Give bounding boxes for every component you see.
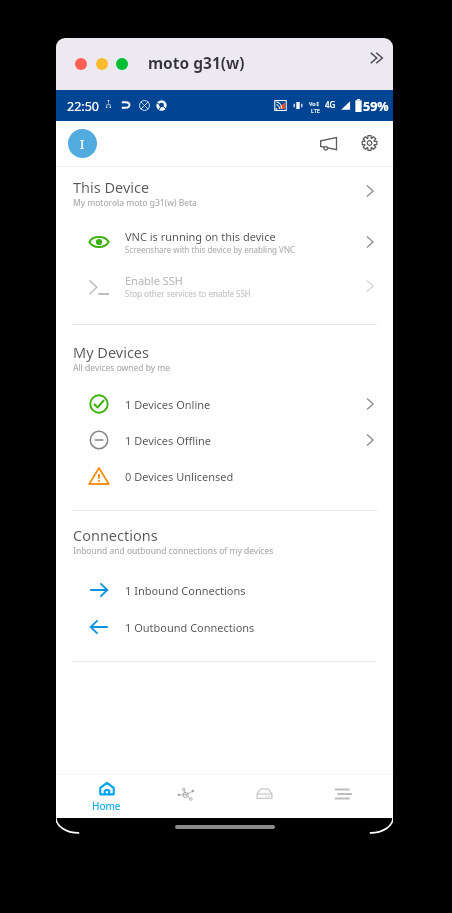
staticText: Connections bbox=[73, 525, 158, 545]
button[interactable]: Account bbox=[68, 129, 97, 158]
button[interactable]: 1 Devices Online bbox=[56, 386, 393, 422]
staticText: This Device bbox=[73, 177, 150, 197]
staticText: All devices owned by me bbox=[73, 362, 171, 374]
button[interactable]: Network bbox=[146, 774, 225, 818]
button[interactable]: Home bbox=[66, 774, 146, 818]
staticText: Screenshare with this device by enabling… bbox=[125, 244, 296, 255]
staticText: Inbound and outbound connections of my d… bbox=[73, 545, 274, 557]
staticText: Stop other services to enable SSH bbox=[125, 288, 251, 299]
button[interactable]: 1 Devices Offline bbox=[56, 422, 393, 458]
button[interactable]: Enable SSH bbox=[56, 268, 393, 304]
button[interactable]: Menu bbox=[304, 774, 383, 818]
staticText: 1 Devices Offline bbox=[125, 433, 212, 448]
button[interactable]: Devices bbox=[225, 774, 304, 818]
button[interactable]: Settings bbox=[354, 128, 384, 158]
button[interactable]: 0 Devices Unlicensed bbox=[56, 458, 393, 494]
staticText: 1 Devices Online bbox=[125, 397, 211, 412]
staticText: VNC is running on this device bbox=[125, 229, 276, 244]
staticText: moto g31(w) bbox=[148, 52, 245, 73]
button[interactable]: 1 Outbound Connections bbox=[56, 609, 393, 645]
staticText: 1 Inbound Connections bbox=[125, 583, 246, 598]
staticText: 0 Devices Unlicensed bbox=[125, 469, 234, 484]
staticText: My motorola moto g31(w) Beta bbox=[73, 197, 197, 209]
staticText: 4G bbox=[325, 99, 336, 110]
button[interactable]: VNC is running on this device bbox=[56, 224, 393, 260]
button[interactable]: More bbox=[362, 44, 390, 72]
staticText: 59% bbox=[363, 98, 389, 115]
button[interactable]: 1 Inbound Connections bbox=[56, 572, 393, 608]
staticText: 22:50 bbox=[67, 98, 99, 115]
staticText: LTE bbox=[311, 107, 320, 114]
staticText: Enable SSH bbox=[125, 273, 183, 288]
staticText: I bbox=[80, 135, 85, 153]
button[interactable]: Announcements bbox=[313, 128, 343, 158]
staticText: My Devices bbox=[73, 342, 149, 362]
staticText: Home bbox=[92, 799, 121, 813]
staticText: Vo↕ bbox=[309, 100, 321, 107]
staticText: 1 Outbound Connections bbox=[125, 620, 255, 635]
button[interactable]: This Device bbox=[56, 176, 393, 210]
